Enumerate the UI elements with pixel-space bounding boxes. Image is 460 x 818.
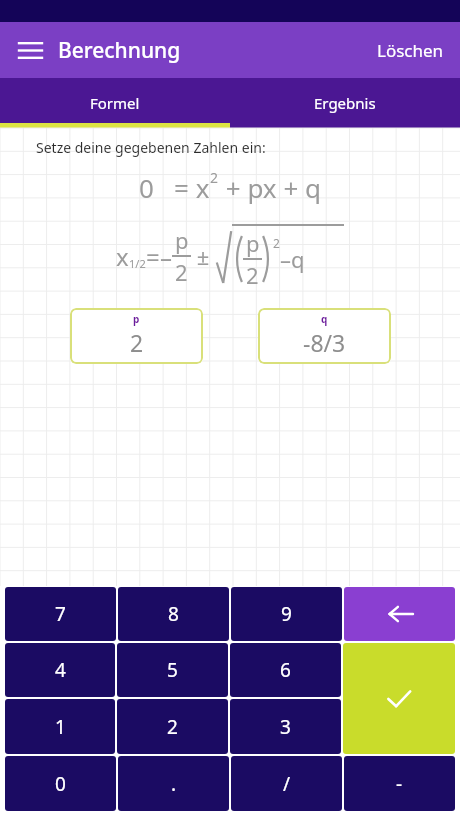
staticText: 2: [167, 714, 178, 740]
staticText: –: [160, 240, 172, 273]
staticText: Berechnung: [58, 36, 181, 65]
staticText: 2: [175, 257, 188, 287]
staticText: 1: [55, 714, 66, 740]
staticText: -8/3: [303, 327, 346, 358]
button[interactable]: .: [118, 756, 229, 811]
staticText: 2: [273, 235, 280, 251]
staticText: -: [396, 771, 403, 797]
button[interactable]: Löschen: [361, 25, 460, 76]
staticText: 2: [130, 327, 144, 358]
staticText: Löschen: [377, 39, 444, 62]
staticText: p: [175, 225, 189, 255]
staticText: .: [171, 771, 177, 797]
staticText: 6: [280, 657, 291, 683]
staticText: Formel: [90, 93, 140, 113]
button[interactable]: Formel: [0, 78, 230, 128]
staticText: = x: [174, 170, 210, 205]
staticText: 2: [246, 260, 259, 290]
button[interactable]: 5: [117, 643, 228, 697]
button[interactable]: /: [231, 756, 342, 811]
button[interactable]: -: [344, 756, 455, 811]
button[interactable]: 4: [5, 643, 115, 697]
staticText: + px + q: [219, 170, 321, 205]
button[interactable]: 0: [5, 756, 116, 811]
staticText: 5: [167, 657, 178, 683]
staticText: p: [246, 228, 260, 258]
button[interactable]: 8: [118, 587, 229, 641]
button[interactable]: Open navigation menu: [6, 26, 54, 74]
button[interactable]: p: [70, 308, 203, 364]
staticText: x: [116, 240, 129, 273]
staticText: 0: [55, 771, 66, 797]
staticText: Ergebnis: [314, 93, 376, 113]
staticText: 8: [168, 601, 179, 627]
staticText: q: [321, 312, 328, 326]
button[interactable]: Ergebnis: [230, 78, 460, 128]
staticText: –q: [280, 244, 305, 274]
staticText: 4: [55, 657, 66, 683]
button[interactable]: 3: [230, 699, 341, 754]
staticText: 7: [55, 601, 66, 627]
button[interactable]: Backspace: [344, 587, 455, 641]
staticText: ±: [191, 241, 216, 271]
staticText: 2: [210, 168, 219, 187]
button[interactable]: 1: [5, 699, 115, 754]
staticText: /: [283, 771, 291, 797]
button[interactable]: 2: [117, 699, 228, 754]
button[interactable]: 9: [231, 587, 342, 641]
staticText: p: [133, 312, 140, 326]
button[interactable]: Confirm: [343, 643, 455, 754]
button[interactable]: 7: [5, 587, 116, 641]
staticText: 0: [139, 170, 154, 205]
staticText: =: [146, 240, 160, 273]
button[interactable]: 6: [230, 643, 341, 697]
button[interactable]: q: [258, 308, 391, 364]
staticText: 1/2: [129, 256, 146, 271]
staticText: 3: [280, 714, 291, 740]
staticText: 9: [281, 601, 292, 627]
staticText: Setze deine gegebenen Zahlen ein:: [36, 138, 266, 157]
